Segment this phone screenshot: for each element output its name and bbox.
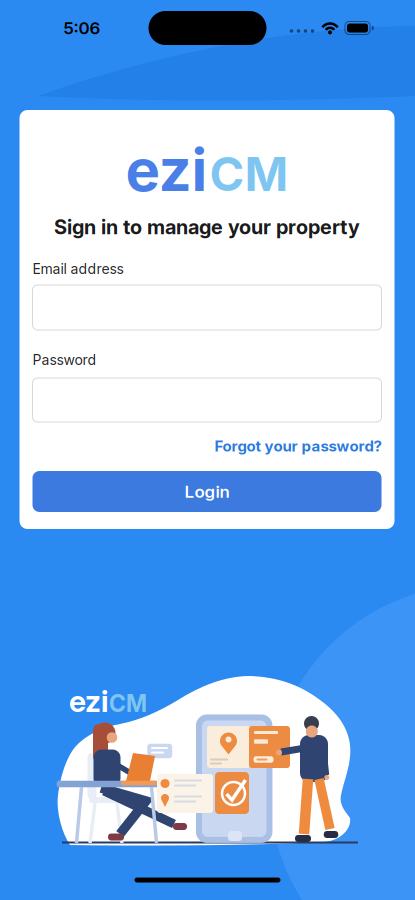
staticText: Email address xyxy=(32,261,123,277)
button[interactable]: Email address xyxy=(32,285,381,330)
staticText: CM xyxy=(109,690,147,717)
button[interactable]: Forgot your password? xyxy=(214,437,381,455)
staticText: Forgot your password? xyxy=(214,437,381,455)
staticText: ezi xyxy=(125,136,207,204)
staticText: Login xyxy=(184,481,229,502)
staticText: Password xyxy=(32,352,96,368)
staticText: Sign in to manage your property xyxy=(54,215,360,239)
button[interactable]: Login xyxy=(32,471,381,512)
staticText: ezi xyxy=(69,683,108,719)
button[interactable]: Password xyxy=(32,378,381,422)
staticText: CM xyxy=(209,146,288,202)
staticText: 5:06 xyxy=(63,18,100,38)
